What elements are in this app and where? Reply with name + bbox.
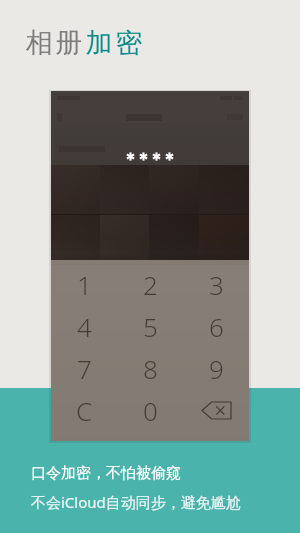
button[interactable]: C <box>51 389 117 431</box>
staticText: 9 <box>209 351 224 386</box>
staticText: 5 <box>143 309 158 344</box>
staticText: 不会iCloud自动同步，避免尴尬 <box>31 492 241 512</box>
staticText: 6 <box>209 309 224 344</box>
staticText: 3 <box>209 267 224 302</box>
staticText: 0 <box>143 393 158 428</box>
staticText: 2 <box>143 267 158 302</box>
staticText: 8 <box>143 351 158 386</box>
staticText: 1 <box>77 267 92 302</box>
button[interactable]: 8 <box>117 347 183 389</box>
button[interactable]: 5 <box>117 305 183 347</box>
button[interactable]: 9 <box>183 347 249 389</box>
staticText: 口令加密，不怕被偷窥 <box>31 464 181 483</box>
button[interactable]: 0 <box>117 389 183 431</box>
button[interactable]: 3 <box>183 263 249 305</box>
button[interactable]: Delete <box>183 389 249 431</box>
button[interactable]: 4 <box>51 305 117 347</box>
staticText: 4 <box>77 309 92 344</box>
staticText: 7 <box>77 351 92 386</box>
button[interactable]: 7 <box>51 347 117 389</box>
button[interactable]: 1 <box>51 263 117 305</box>
staticText: 相册加密 <box>24 26 144 60</box>
staticText: C <box>76 393 93 428</box>
button[interactable]: 6 <box>183 305 249 347</box>
button[interactable]: 2 <box>117 263 183 305</box>
